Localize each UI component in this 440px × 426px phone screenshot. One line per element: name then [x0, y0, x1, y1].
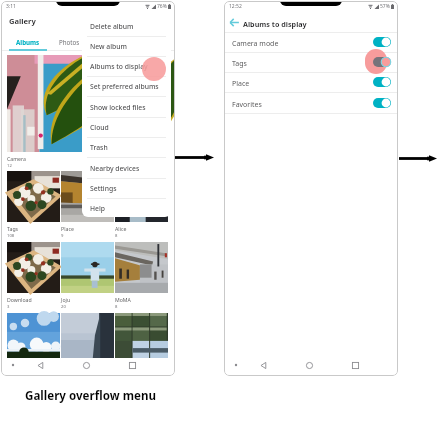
button[interactable]: Trash: [82, 137, 171, 157]
button[interactable]: [7, 313, 60, 358]
staticText: New album: [90, 42, 127, 51]
button[interactable]: [7, 55, 169, 152]
button[interactable]: Albums: [7, 35, 48, 48]
staticText: Camera: [7, 155, 26, 162]
button[interactable]: Home: [304, 360, 315, 371]
button[interactable]: [115, 171, 168, 222]
staticText: 8: [115, 233, 118, 239]
button[interactable]: Recents: [350, 360, 361, 371]
button[interactable]: Show locked files: [82, 97, 171, 117]
button[interactable]: Delete album: [82, 16, 171, 36]
staticText: 3: [7, 304, 10, 310]
staticText: 8: [115, 304, 118, 310]
staticText: MoMA: [115, 296, 131, 303]
button[interactable]: [61, 242, 114, 293]
staticText: Cloud: [90, 123, 109, 132]
staticText: Help: [90, 204, 106, 213]
staticText: Tags: [232, 59, 247, 69]
staticText: Alice: [115, 225, 127, 232]
staticText: Favorites: [232, 100, 262, 110]
button[interactable]: [61, 313, 114, 358]
staticText: 76%: [157, 3, 167, 10]
staticText: Gallery: [9, 16, 36, 26]
staticText: Download: [7, 296, 32, 303]
staticText: Nearby devices: [90, 164, 140, 173]
staticText: Show locked files: [90, 103, 146, 112]
staticText: Set preferred albums: [90, 82, 159, 91]
staticText: Joju: [61, 296, 71, 303]
button[interactable]: [115, 313, 168, 358]
button[interactable]: [7, 171, 60, 222]
staticText: Albums: [16, 38, 40, 46]
staticText: Gallery overflow menu: [25, 388, 156, 404]
button[interactable]: Nearby devices: [82, 158, 171, 178]
button[interactable]: Back: [35, 360, 46, 371]
staticText: 12: [7, 163, 12, 169]
staticText: 108: [7, 233, 15, 239]
button[interactable]: Place: [224, 72, 398, 92]
staticText: Delete album: [90, 22, 134, 31]
staticText: Tags: [7, 225, 19, 232]
button[interactable]: [61, 171, 114, 222]
button[interactable]: Set preferred albums: [82, 76, 171, 96]
button[interactable]: Menu: [231, 360, 241, 370]
button[interactable]: Home: [81, 360, 92, 371]
button[interactable]: Tags: [224, 52, 398, 72]
staticText: Albums to display: [90, 62, 148, 71]
button[interactable]: Cloud: [82, 117, 171, 137]
staticText: 9: [61, 233, 64, 239]
staticText: Photos: [59, 38, 80, 46]
button[interactable]: Back: [258, 360, 269, 371]
staticText: 20: [61, 304, 66, 310]
button[interactable]: New album: [82, 36, 171, 56]
staticText: Camera mode: [232, 39, 279, 49]
staticText: Place: [61, 225, 74, 232]
button[interactable]: Back: [228, 16, 241, 29]
button[interactable]: Help: [82, 198, 171, 217]
button[interactable]: [115, 242, 168, 293]
button[interactable]: Photos: [48, 35, 90, 48]
staticText: 3:11: [6, 3, 16, 10]
staticText: Albums to display: [243, 19, 307, 29]
button[interactable]: Albums to display: [82, 56, 171, 76]
button[interactable]: Camera mode: [224, 32, 398, 52]
staticText: Place: [232, 79, 250, 89]
staticText: Settings: [90, 184, 117, 193]
button[interactable]: Settings: [82, 178, 171, 198]
staticText: 12:52: [229, 3, 242, 10]
button[interactable]: Recents: [127, 360, 138, 371]
staticText: 57%: [380, 3, 390, 10]
staticText: Trash: [90, 143, 108, 152]
button[interactable]: Favorites: [224, 93, 398, 113]
button[interactable]: Menu: [8, 360, 18, 370]
button[interactable]: [7, 242, 60, 293]
